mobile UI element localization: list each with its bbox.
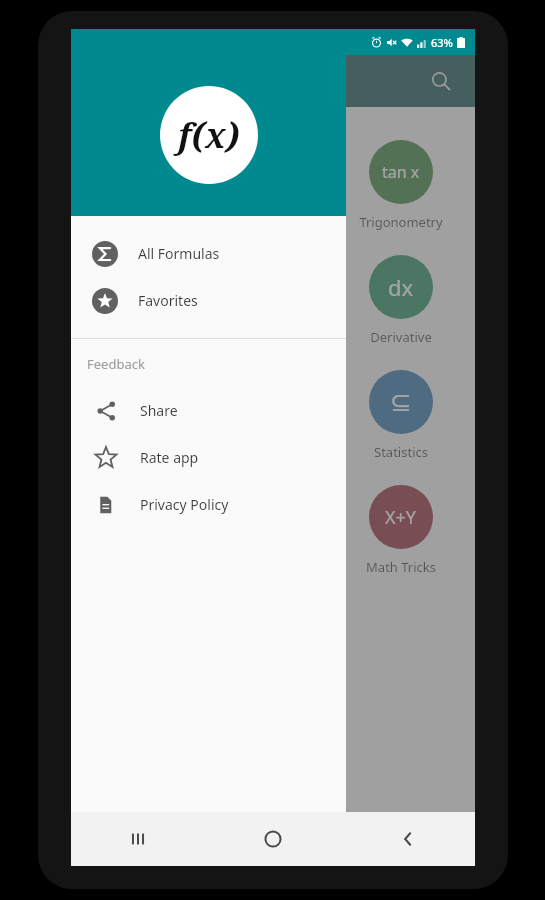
button[interactable]: Search (421, 61, 461, 101)
staticText: Privacy Policy (140, 495, 229, 514)
button[interactable]: Home (205, 812, 340, 866)
button[interactable]: Rate app (71, 434, 346, 481)
button[interactable] (71, 55, 475, 812)
staticText: Statistics (374, 443, 428, 461)
button[interactable]: ⊆ (327, 370, 475, 461)
staticText: Rate app (140, 448, 199, 467)
staticText: Share (140, 401, 178, 420)
button[interactable]: X+Y (327, 485, 475, 576)
staticText: dx (388, 272, 414, 302)
staticText: Derivative (370, 328, 432, 346)
button[interactable]: Favorites (71, 277, 346, 324)
button[interactable]: Recent apps (71, 812, 205, 866)
staticText: tan x (382, 161, 420, 183)
staticText: Favorites (138, 291, 198, 310)
button[interactable]: All Formulas (71, 230, 346, 277)
staticText: 63% (431, 35, 453, 50)
button[interactable]: Back (340, 812, 475, 866)
staticText: All Formulas (138, 244, 220, 263)
staticText: Feedback (87, 355, 145, 373)
button[interactable]: Privacy Policy (71, 481, 346, 528)
staticText: ⊆ (390, 387, 412, 417)
button[interactable]: dx (327, 255, 475, 346)
staticText: X+Y (385, 505, 417, 530)
staticText: Trigonometry (359, 213, 443, 231)
button[interactable]: tan x (327, 140, 475, 231)
staticText: Math Tricks (366, 558, 436, 576)
staticText: f(x) (178, 112, 240, 158)
button[interactable]: Share (71, 387, 346, 434)
